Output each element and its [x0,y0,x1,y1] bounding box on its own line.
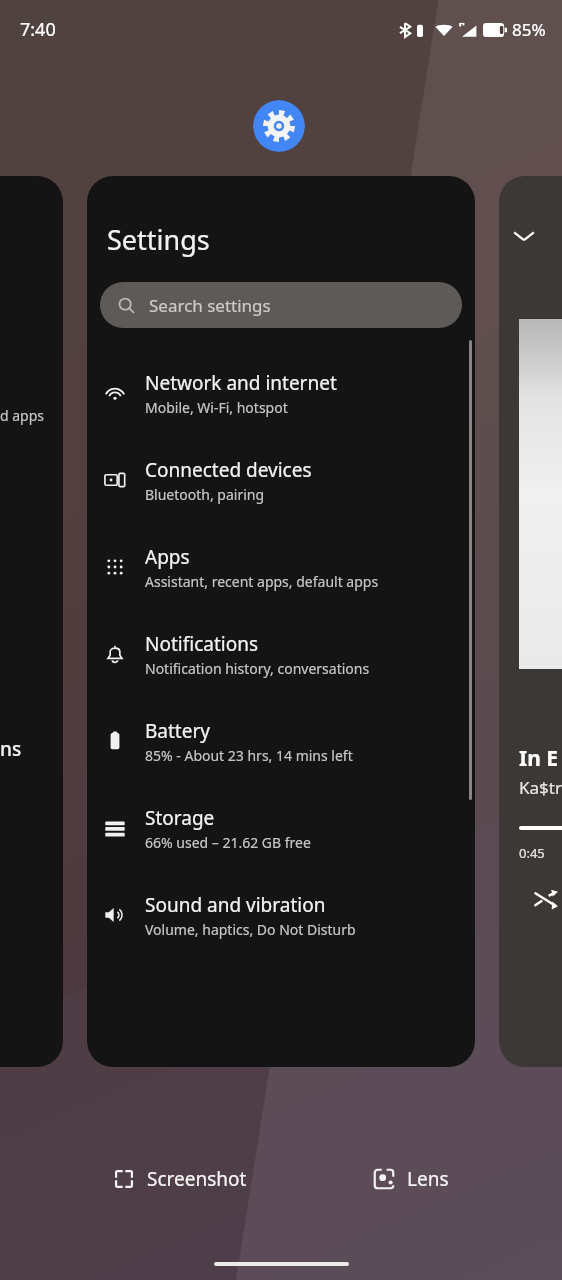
button[interactable]: Storage [87,793,475,863]
button[interactable]: Search settings [100,282,462,328]
staticText: 7:40 [20,17,56,42]
staticText: Connected devices [145,457,312,483]
staticText: Battery [145,718,210,744]
staticText: Search settings [149,294,271,317]
button[interactable]: Battery [87,706,475,776]
staticText: d apps [0,406,45,425]
other: Shuffle [533,886,559,912]
staticText: Screenshot [147,1166,247,1192]
staticText: Ka$tr [519,776,562,799]
staticText: Volume, haptics, Do Not Disturb [145,920,356,939]
button[interactable]: Notifications [87,619,475,689]
staticText: Notifications [145,631,259,657]
staticText: 85% [512,18,546,41]
button[interactable]: Apps [87,532,475,602]
button[interactable]: Network and internet [87,358,475,428]
staticText: Mobile, Wi-Fi, hotspot [145,398,288,417]
staticText: Sound and vibration [145,892,326,918]
staticText: Bluetooth, pairing [145,485,265,504]
staticText: Storage [145,805,215,831]
staticText: Apps [145,544,190,570]
staticText: 0:45 [519,844,545,862]
button[interactable]: Previous app [0,176,63,1067]
other: Collapse [511,228,537,244]
button[interactable]: Next app [499,176,562,1067]
button[interactable]: Sound and vibration [87,880,475,950]
button[interactable]: Settings app icon [253,100,305,152]
staticText: Lens [407,1166,449,1192]
button[interactable]: Screenshot [103,1158,257,1200]
staticText: 66% used – 21.62 GB free [145,833,311,852]
staticText: In E [519,744,559,773]
staticText: Notification history, conversations [145,659,370,678]
button[interactable]: Settings [87,176,475,1067]
button[interactable]: Lens [363,1158,459,1200]
staticText: Network and internet [145,370,337,396]
staticText: 85% - About 23 hrs, 14 mins left [145,746,353,765]
staticText: ns [0,736,22,762]
staticText: Assistant, recent apps, default apps [145,572,379,591]
staticText: Settings [107,221,210,258]
button[interactable]: Connected devices [87,445,475,515]
